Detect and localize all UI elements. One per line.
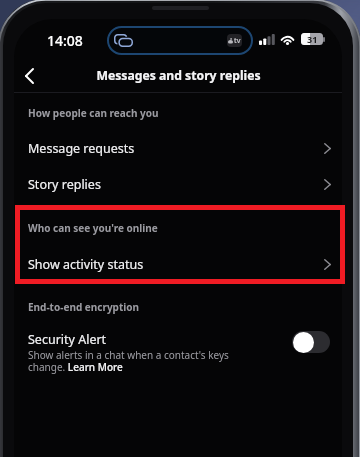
staticText: End-to-end encryption [28, 300, 140, 314]
staticText: Show activity status [28, 256, 144, 273]
staticText: Show alerts in a chat when a contact's k… [28, 348, 268, 374]
staticText: How people can reach you [28, 106, 159, 120]
staticText: Messages and story replies [96, 67, 261, 84]
button[interactable]: Story replies [14, 167, 342, 201]
staticText: Message requests [28, 140, 135, 157]
staticText: Security Alert [28, 331, 107, 348]
staticText: 14:08 [47, 31, 83, 50]
staticText: Who can see you're online [28, 221, 158, 235]
button[interactable]: Message requests [14, 131, 342, 165]
button[interactable]: Security Alert [14, 331, 342, 374]
staticText: Story replies [28, 176, 101, 193]
staticText: 31 [307, 33, 318, 45]
button[interactable]: Security Alert toggle [292, 331, 330, 353]
staticText: tv [234, 36, 241, 46]
button[interactable]: Show activity status [14, 247, 342, 281]
button[interactable]: Back [14, 61, 44, 91]
